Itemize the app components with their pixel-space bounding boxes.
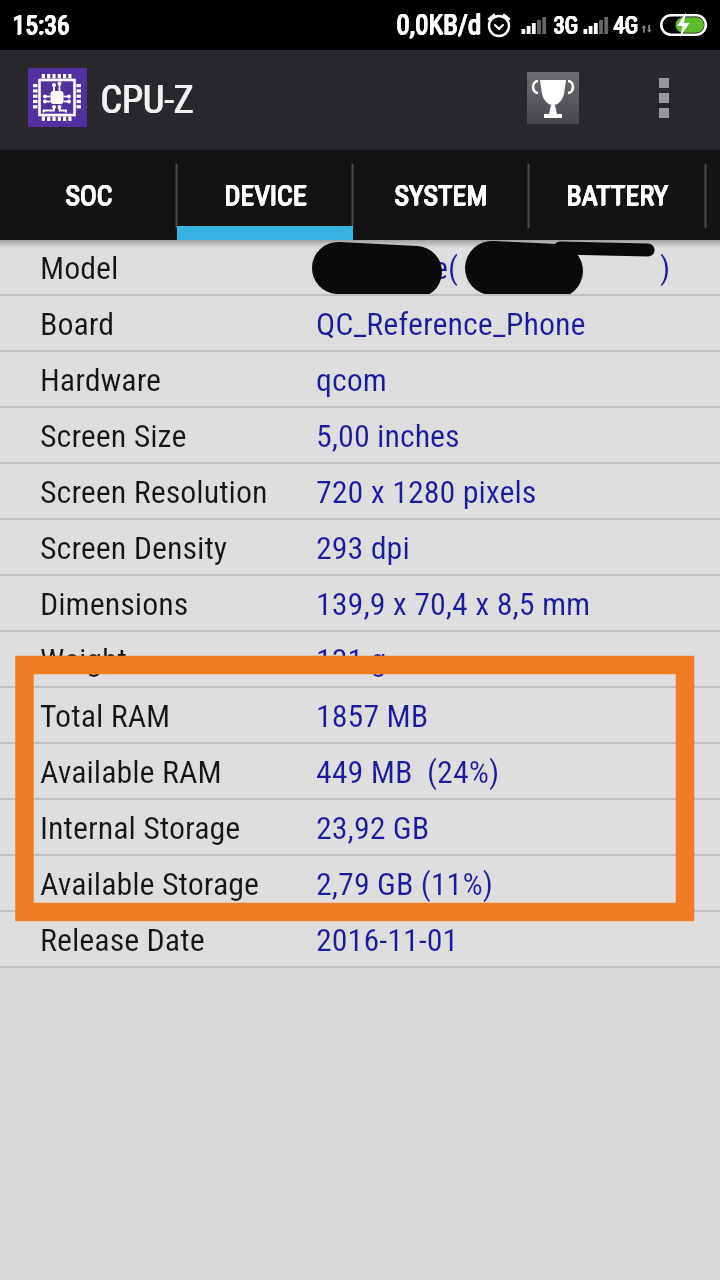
staticText: 0,0KB/d (396, 10, 481, 42)
staticText: Available RAM (40, 753, 222, 791)
staticText: Screen Size (40, 417, 187, 455)
staticText: DEVICE (224, 180, 307, 213)
button[interactable]: Screen Size (0, 408, 720, 464)
staticText: Internal Storage (40, 809, 241, 847)
staticText: SOC (65, 179, 113, 212)
button[interactable]: Available Storage (0, 856, 720, 912)
staticText: qcom (316, 361, 387, 399)
button[interactable]: Available RAM (0, 744, 720, 800)
staticText: 15:36 (12, 10, 70, 40)
staticText: Dimensions (40, 585, 189, 623)
staticText: 131 g (316, 641, 387, 679)
staticText: DEVICE (225, 179, 308, 212)
staticText: Hardware (40, 361, 162, 399)
staticText: SYSTEM (394, 179, 488, 212)
staticText: QC_Reference_Phone (316, 305, 586, 343)
staticText: 15:36 (13, 10, 71, 40)
button[interactable]: Internal Storage (0, 800, 720, 856)
staticText: 5,00 inches (316, 417, 460, 455)
staticText: 3G (553, 12, 578, 39)
staticText: 2016-11-01 (316, 921, 459, 959)
staticText: SOC (65, 180, 113, 213)
button[interactable]: Board (0, 296, 720, 352)
button[interactable]: Total RAM (0, 688, 720, 744)
staticText: 15:36 (12, 11, 70, 41)
staticText: CPU-Z (101, 78, 195, 123)
staticText: 3G (554, 12, 579, 39)
staticText: 4G (613, 12, 638, 39)
staticText: 4G (613, 13, 638, 40)
staticText: SOC (66, 179, 114, 212)
button[interactable] (647, 68, 683, 132)
staticText: Available Storage (40, 865, 259, 903)
staticText: SYSTEM (394, 180, 488, 213)
staticText: BATTERY (567, 179, 669, 212)
button[interactable]: BATTERY (529, 150, 705, 240)
button[interactable]: Weight (0, 632, 720, 688)
staticText: e( (433, 249, 459, 287)
staticText: BATTERY (566, 180, 668, 213)
staticText: CPU-Z (100, 78, 194, 123)
button[interactable]: Release Date (0, 912, 720, 968)
button[interactable] (527, 72, 579, 124)
staticText: Screen Resolution (40, 473, 268, 511)
button[interactable]: SYSTEM (353, 150, 529, 240)
staticText: Total RAM (40, 697, 171, 735)
staticText: DEVICE (224, 179, 307, 212)
button[interactable]: SOC (0, 150, 177, 240)
staticText: 1857 MB (316, 697, 429, 735)
staticText: 139,9 x 70,4 x 8,5 mm (316, 585, 591, 623)
staticText: 4G (614, 12, 639, 39)
button[interactable]: Model (0, 240, 720, 296)
staticText: 0,0KB/d (397, 9, 482, 41)
staticText: SYSTEM (395, 179, 489, 212)
staticText: Screen Density (40, 529, 228, 567)
staticText: Weight (40, 641, 127, 679)
button[interactable]: Dimensions (0, 576, 720, 632)
staticText: Model (40, 249, 119, 287)
staticText: 0,0KB/d (396, 9, 481, 41)
staticText: 3G (553, 13, 578, 40)
staticText: 293 dpi (316, 529, 410, 567)
button[interactable]: Hardware (0, 352, 720, 408)
staticText: 720 x 1280 pixels (316, 473, 537, 511)
staticText: 449 MB (24%) (316, 753, 500, 791)
staticText: 2,79 GB (11%) (316, 865, 493, 903)
button[interactable]: DEVICE (177, 150, 353, 240)
staticText: 23,92 GB (316, 809, 430, 847)
button[interactable]: Screen Density (0, 520, 720, 576)
staticText: BATTERY (566, 179, 668, 212)
staticText: ) (660, 249, 671, 287)
staticText: Release Date (40, 921, 205, 959)
button[interactable]: Screen Resolution (0, 464, 720, 520)
staticText: Board (40, 305, 115, 343)
